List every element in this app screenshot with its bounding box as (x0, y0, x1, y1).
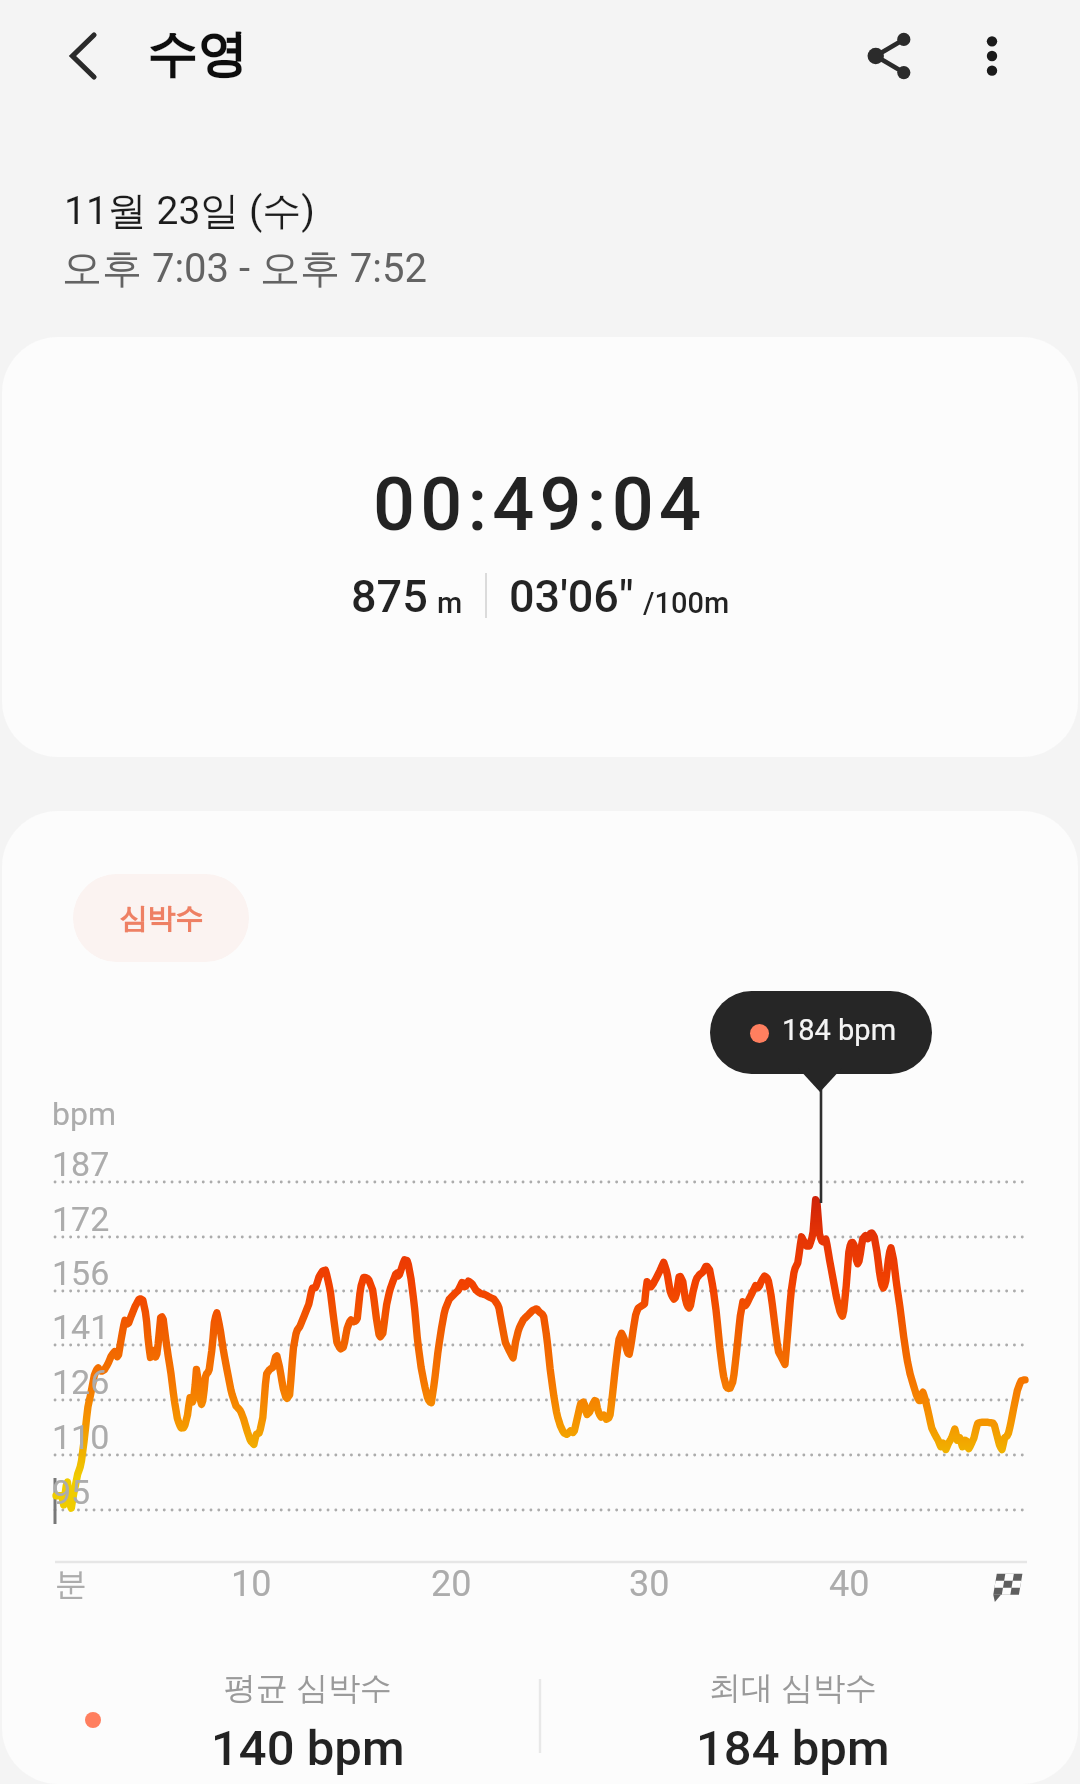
staticText: 수영 (147, 23, 247, 86)
staticText: 40 (829, 1563, 870, 1605)
staticText: 평균 심박수 (224, 1668, 392, 1708)
staticText: 20 (431, 1563, 472, 1605)
staticText: 30 (629, 1563, 670, 1605)
staticText: 11월 23일 (수) (64, 186, 315, 235)
staticText: 187 (52, 1144, 110, 1184)
staticText: bpm (52, 1095, 116, 1133)
button[interactable]: Share (834, 0, 946, 112)
staticText: 분 (55, 1564, 87, 1604)
button[interactable]: Back (28, 0, 140, 112)
staticText: 184 bpm (782, 1013, 897, 1047)
staticText: 184 bpm (696, 1720, 890, 1777)
button[interactable]: 심박수 (73, 874, 249, 962)
button[interactable]: More options (936, 0, 1048, 112)
staticText: 126 (52, 1362, 110, 1402)
staticText: 최대 심박수 (709, 1668, 877, 1708)
staticText: 875 (351, 570, 428, 623)
button[interactable]: 184 bpm (710, 991, 932, 1074)
staticText: 03'06" (509, 570, 634, 623)
staticText: 오후 7:03 - 오후 7:52 (62, 243, 427, 293)
staticText: m (437, 586, 463, 620)
staticText: /100m (643, 586, 730, 620)
staticText: 140 bpm (211, 1720, 405, 1777)
staticText: 156 (52, 1253, 110, 1293)
button[interactable]: 심박수 (2, 811, 1078, 1784)
staticText: 00:49:04 (373, 461, 707, 548)
button[interactable]: 00:49:04 (2, 337, 1078, 757)
staticText: 심박수 (119, 901, 203, 936)
staticText: 95 (52, 1472, 91, 1512)
staticText: 141 (52, 1307, 110, 1347)
staticText: 10 (231, 1563, 272, 1605)
staticText: 172 (52, 1199, 110, 1239)
staticText: 110 (52, 1417, 110, 1457)
